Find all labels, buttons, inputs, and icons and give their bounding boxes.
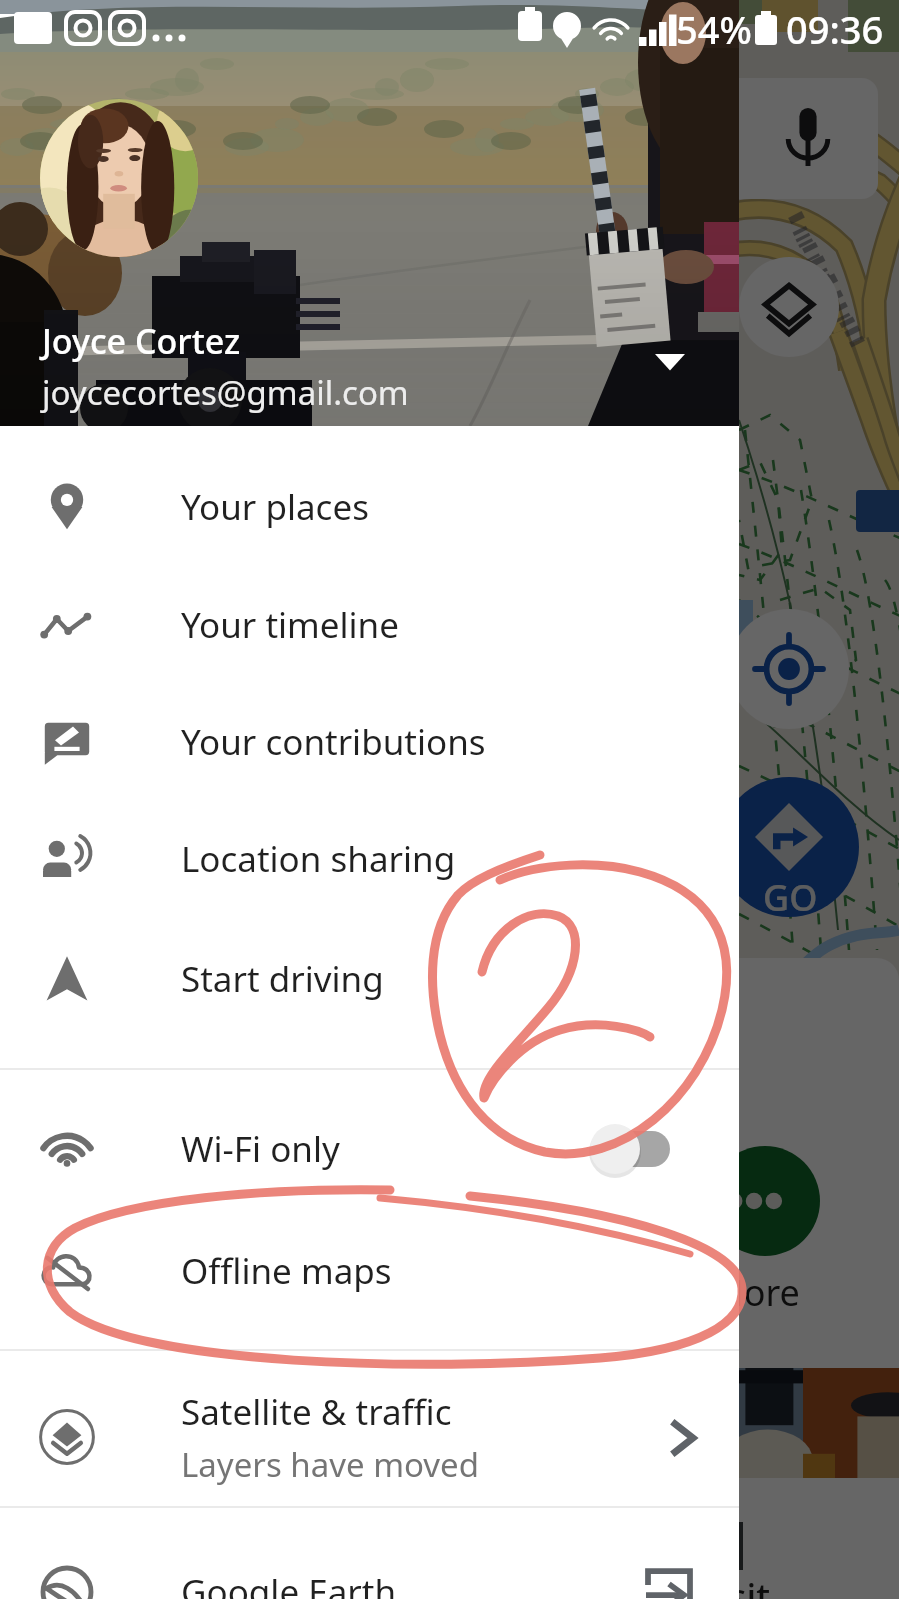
button[interactable]: Map layers [739, 257, 839, 357]
staticText: Wi-Fi only [181, 1125, 340, 1173]
staticText: More [739, 1268, 800, 1317]
button[interactable]: Start navigation [719, 777, 859, 917]
staticText: Satellite & traffic [181, 1388, 452, 1436]
staticText: 54% [676, 3, 752, 55]
staticText: Start driving [181, 955, 384, 1003]
button[interactable]: Open satellite and traffic [655, 1409, 713, 1467]
staticText: Offline maps [181, 1247, 392, 1295]
staticText: joycecortes@gmail.com [42, 370, 409, 415]
staticText: Your contributions [181, 718, 486, 766]
staticText: Location sharing [181, 835, 456, 883]
button[interactable]: Voice search [739, 78, 878, 199]
button[interactable]: Wi-Fi only [0, 1090, 739, 1208]
button[interactable]: More [739, 1146, 820, 1256]
button[interactable]: Your places [0, 448, 739, 566]
button[interactable]: Your contributions [0, 683, 739, 801]
staticText: Your places [181, 483, 369, 531]
staticText: sit [729, 1572, 771, 1599]
button[interactable]: Your timeline [0, 566, 739, 684]
staticText: Your timeline [181, 601, 399, 649]
button[interactable]: Open Google Earth [637, 1560, 701, 1599]
button[interactable]: Account avatar [40, 99, 198, 257]
staticText: Google Earth [181, 1568, 397, 1599]
staticText: GO [763, 873, 818, 917]
button[interactable]: Location sharing [0, 800, 739, 918]
staticText: Layers have moved [181, 1442, 479, 1487]
button[interactable]: Offline maps [0, 1212, 739, 1330]
staticText: 09:36 [786, 3, 884, 55]
button[interactable]: Satellite & traffic [0, 1378, 739, 1496]
button[interactable]: My location [729, 609, 849, 729]
button[interactable]: Google Earth [0, 1533, 739, 1599]
button[interactable]: Wi-Fi only toggle [585, 1115, 685, 1183]
button[interactable]: Start driving [0, 920, 739, 1038]
staticText: Joyce Cortez [42, 318, 241, 364]
button[interactable]: Switch account [640, 330, 700, 390]
